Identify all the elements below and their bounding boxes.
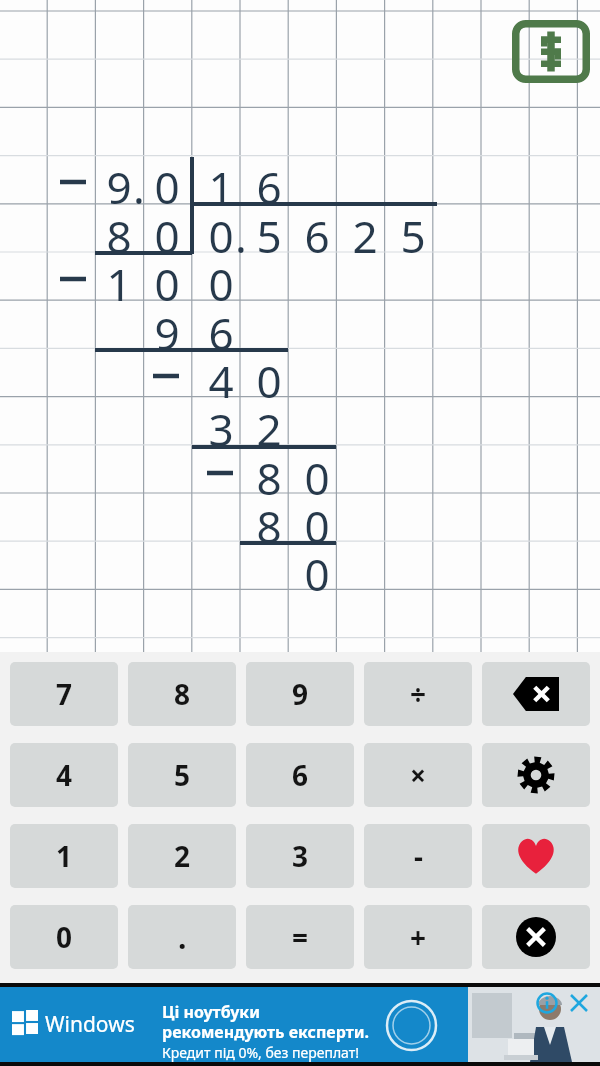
- staticText: 0: [208, 254, 234, 302]
- staticText: 0: [256, 351, 282, 399]
- button[interactable]: 1: [10, 824, 118, 888]
- button[interactable]: -: [364, 824, 472, 888]
- staticText: -: [414, 837, 423, 875]
- button[interactable]: 4: [10, 743, 118, 807]
- button[interactable]: Favorite: [482, 824, 590, 888]
- button[interactable]: Advertisement: [0, 983, 600, 1066]
- staticText: 8: [174, 675, 191, 713]
- staticText: 0: [304, 496, 330, 544]
- staticText: 0: [56, 918, 73, 956]
- staticText: 1: [56, 837, 73, 875]
- staticText: ×: [410, 756, 427, 794]
- staticText: 4: [56, 756, 73, 794]
- staticText: 0: [304, 544, 330, 592]
- staticText: 3: [292, 837, 309, 875]
- staticText: 9: [106, 157, 132, 205]
- staticText: 2: [352, 206, 378, 254]
- staticText: .: [133, 157, 145, 205]
- staticText: 6: [256, 157, 282, 205]
- button[interactable]: 9: [246, 662, 354, 726]
- staticText: 5: [256, 206, 282, 254]
- staticText: 1: [208, 157, 234, 205]
- button[interactable]: .: [128, 905, 236, 969]
- staticText: Кредит під 0%, без переплат!: [162, 1043, 360, 1062]
- staticText: 8: [256, 448, 282, 496]
- staticText: ÷: [410, 675, 427, 713]
- staticText: 2: [174, 837, 191, 875]
- staticText: 0: [304, 448, 330, 496]
- staticText: 6: [292, 756, 309, 794]
- button[interactable]: Premium: [512, 20, 590, 83]
- staticText: +: [410, 918, 427, 956]
- staticText: 8: [106, 206, 132, 254]
- staticText: 0: [208, 206, 234, 254]
- button[interactable]: Settings: [482, 743, 590, 807]
- button[interactable]: 3: [246, 824, 354, 888]
- staticText: 9: [292, 675, 309, 713]
- staticText: .: [235, 206, 247, 254]
- staticText: =: [292, 918, 309, 956]
- staticText: 6: [304, 206, 330, 254]
- button[interactable]: +: [364, 905, 472, 969]
- staticText: Ці ноутбуки: [162, 1001, 260, 1023]
- button[interactable]: 2: [128, 824, 236, 888]
- staticText: 2: [256, 399, 282, 447]
- staticText: 0: [154, 157, 180, 205]
- button[interactable]: 6: [246, 743, 354, 807]
- staticText: 5: [174, 756, 191, 794]
- button[interactable]: Backspace: [482, 662, 590, 726]
- staticText: рекомендують експерти.: [162, 1021, 370, 1043]
- button[interactable]: 5: [128, 743, 236, 807]
- button[interactable]: 7: [10, 662, 118, 726]
- button[interactable]: Ad info: [536, 992, 558, 1014]
- staticText: 9: [154, 303, 180, 351]
- button[interactable]: 0: [10, 905, 118, 969]
- staticText: 8: [256, 496, 282, 544]
- staticText: 7: [56, 675, 73, 713]
- staticText: 0: [154, 254, 180, 302]
- staticText: 6: [208, 303, 234, 351]
- button[interactable]: Close ad: [568, 992, 590, 1014]
- staticText: 3: [208, 399, 234, 447]
- button[interactable]: Clear: [482, 905, 590, 969]
- staticText: 0: [154, 206, 180, 254]
- staticText: Windows: [45, 1010, 135, 1039]
- staticText: 4: [208, 351, 234, 399]
- button[interactable]: ×: [364, 743, 472, 807]
- staticText: 5: [400, 206, 426, 254]
- staticText: .: [178, 917, 187, 958]
- staticText: 1: [106, 254, 132, 302]
- button[interactable]: =: [246, 905, 354, 969]
- button[interactable]: 8: [128, 662, 236, 726]
- button[interactable]: ÷: [364, 662, 472, 726]
